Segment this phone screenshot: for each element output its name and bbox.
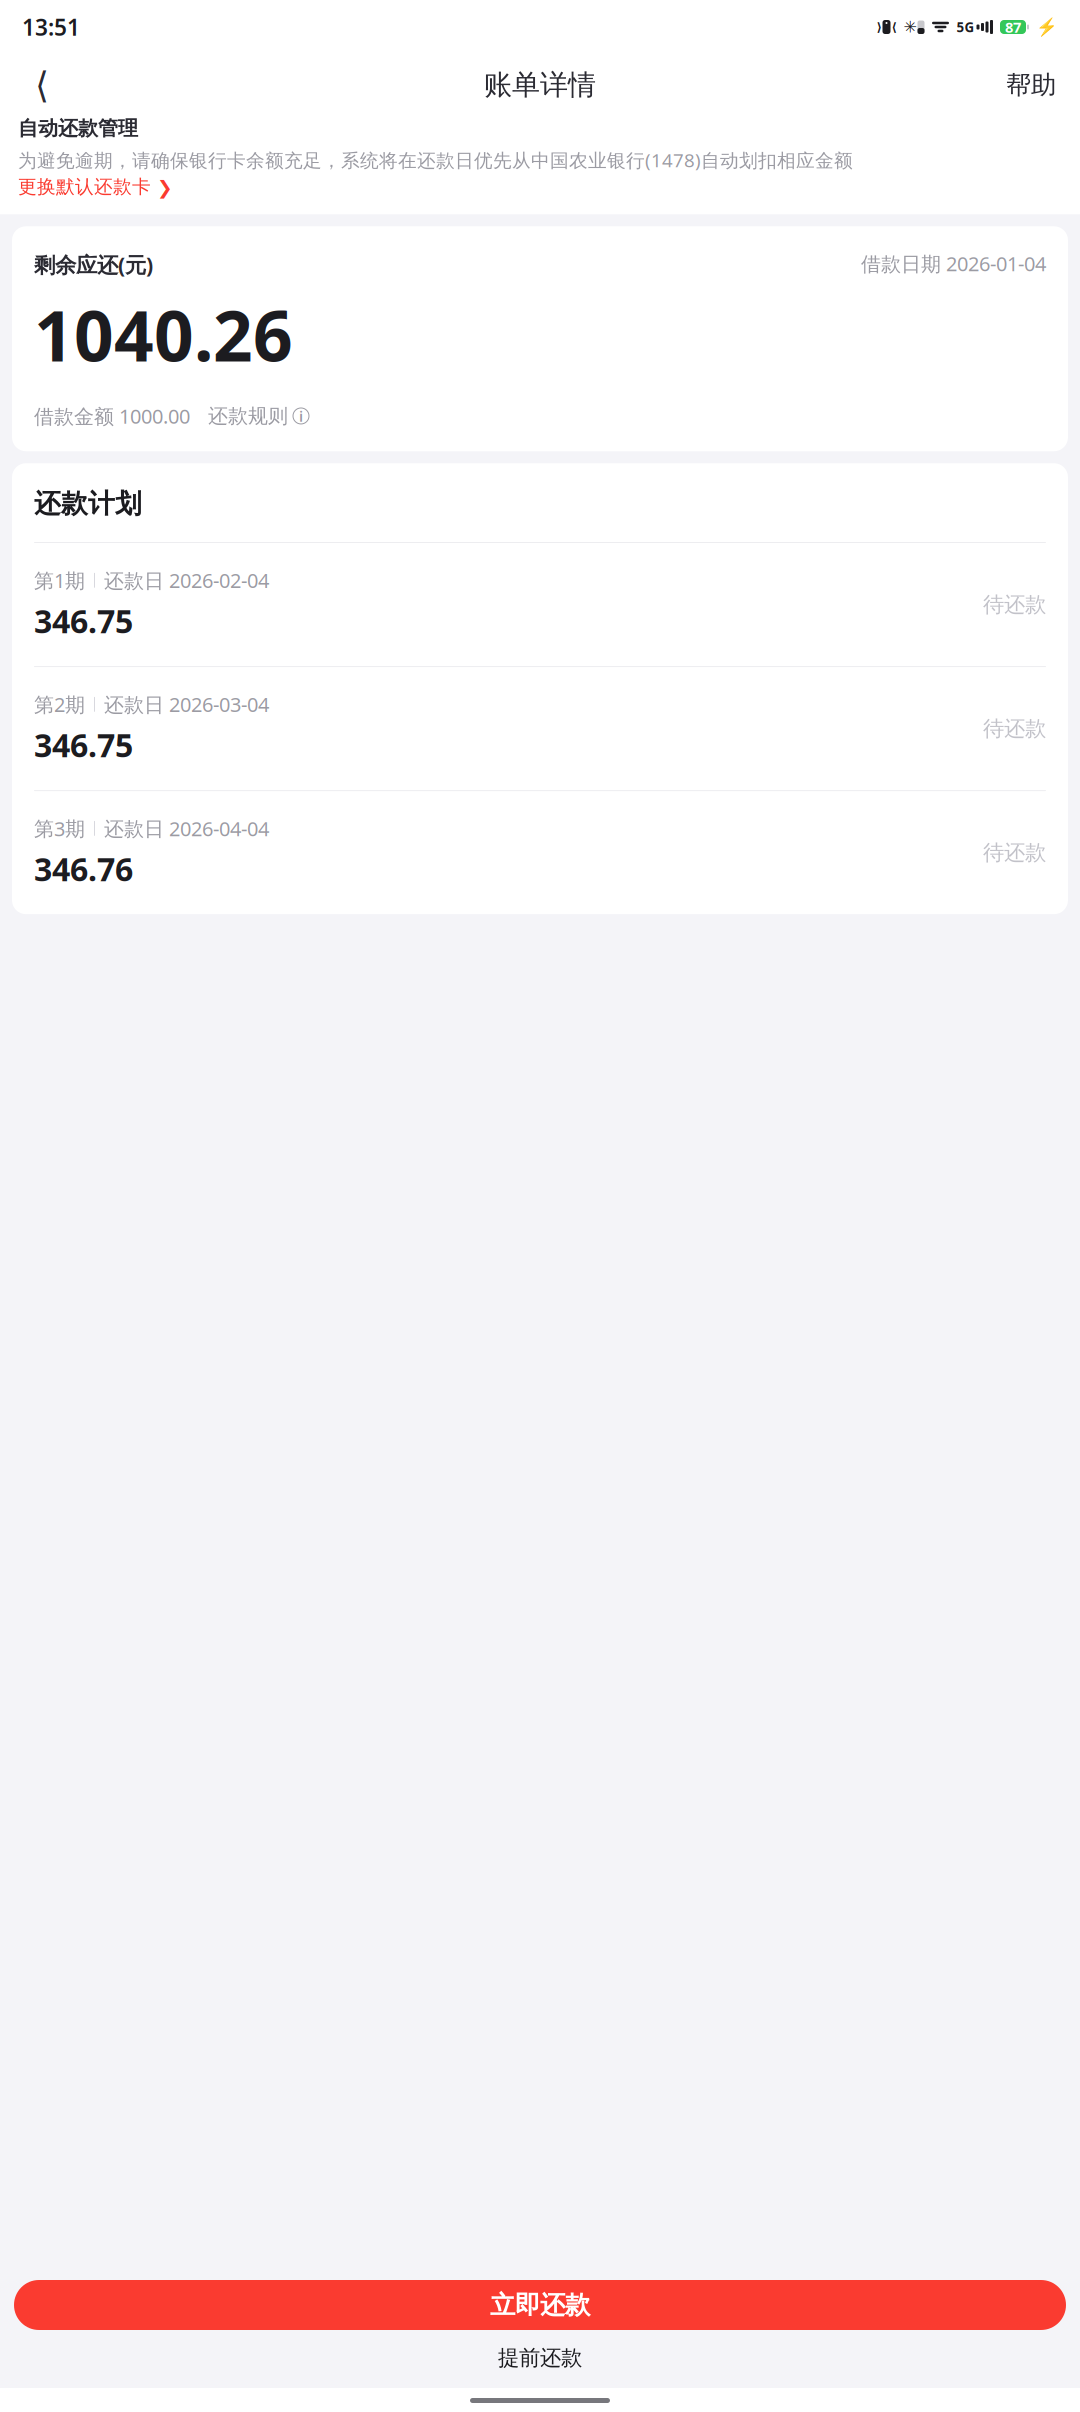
staticText: 立即还款 (490, 2289, 590, 2320)
button[interactable]: 立即还款 (14, 2280, 1066, 2330)
staticText: 更换默认还款卡 ❯ (18, 175, 173, 198)
staticText: 为避免逾期，请确保银行卡余额充足，系统将在还款日优先从中国农业银行(1478)自… (18, 148, 853, 172)
button[interactable]: 第1期 (34, 543, 1046, 666)
staticText: ✳ (903, 18, 916, 36)
staticText: 待还款 (983, 715, 1046, 742)
staticText: 帮助 (1006, 69, 1056, 100)
staticText: 借款日期 2026-01-04 (861, 250, 1046, 277)
staticText: i (299, 406, 303, 426)
staticText: 待还款 (983, 839, 1046, 866)
button[interactable]: 更换默认还款卡 ❯ (18, 175, 173, 198)
button[interactable]: 第3期 (34, 791, 1046, 914)
staticText: 5G (956, 18, 974, 36)
staticText: 346.75 (34, 600, 133, 642)
staticText: ⚡ (1036, 17, 1058, 37)
staticText: 待还款 (983, 591, 1046, 618)
staticText: 借款金额 1000.00 (34, 403, 190, 429)
staticText: 自动还款管理 (18, 116, 138, 141)
staticText: 还款规则 (208, 404, 288, 428)
staticText: 13:51 (22, 12, 80, 42)
button[interactable]: 第2期 (34, 667, 1046, 790)
staticText: 87 (1005, 17, 1021, 37)
staticText: 还款日 2026-03-04 (104, 691, 269, 718)
staticText: 还款计划 (34, 487, 142, 520)
staticText: 还款日 2026-02-04 (104, 567, 269, 594)
button[interactable]: 提前还款 (14, 2336, 1066, 2380)
button[interactable]: 帮助 (1000, 61, 1062, 109)
staticText: 346.75 (34, 724, 133, 766)
staticText: 346.76 (34, 848, 133, 890)
staticText: ⟩ (876, 20, 881, 34)
staticText: ⟨ (35, 65, 49, 105)
button[interactable]: 返回 (18, 61, 66, 109)
staticText: 账单详情 (484, 68, 596, 102)
button[interactable]: 还款规则 (208, 404, 309, 428)
staticText: 剩余应还(元) (34, 250, 153, 279)
staticText: 第3期 (34, 815, 85, 842)
staticText: 还款日 2026-04-04 (104, 815, 269, 842)
staticText: 提前还款 (498, 2345, 582, 2371)
staticText: 1040.26 (34, 289, 293, 381)
staticText: ⟨ (891, 20, 896, 34)
staticText: 第2期 (34, 691, 85, 718)
staticText: 第1期 (34, 567, 85, 594)
